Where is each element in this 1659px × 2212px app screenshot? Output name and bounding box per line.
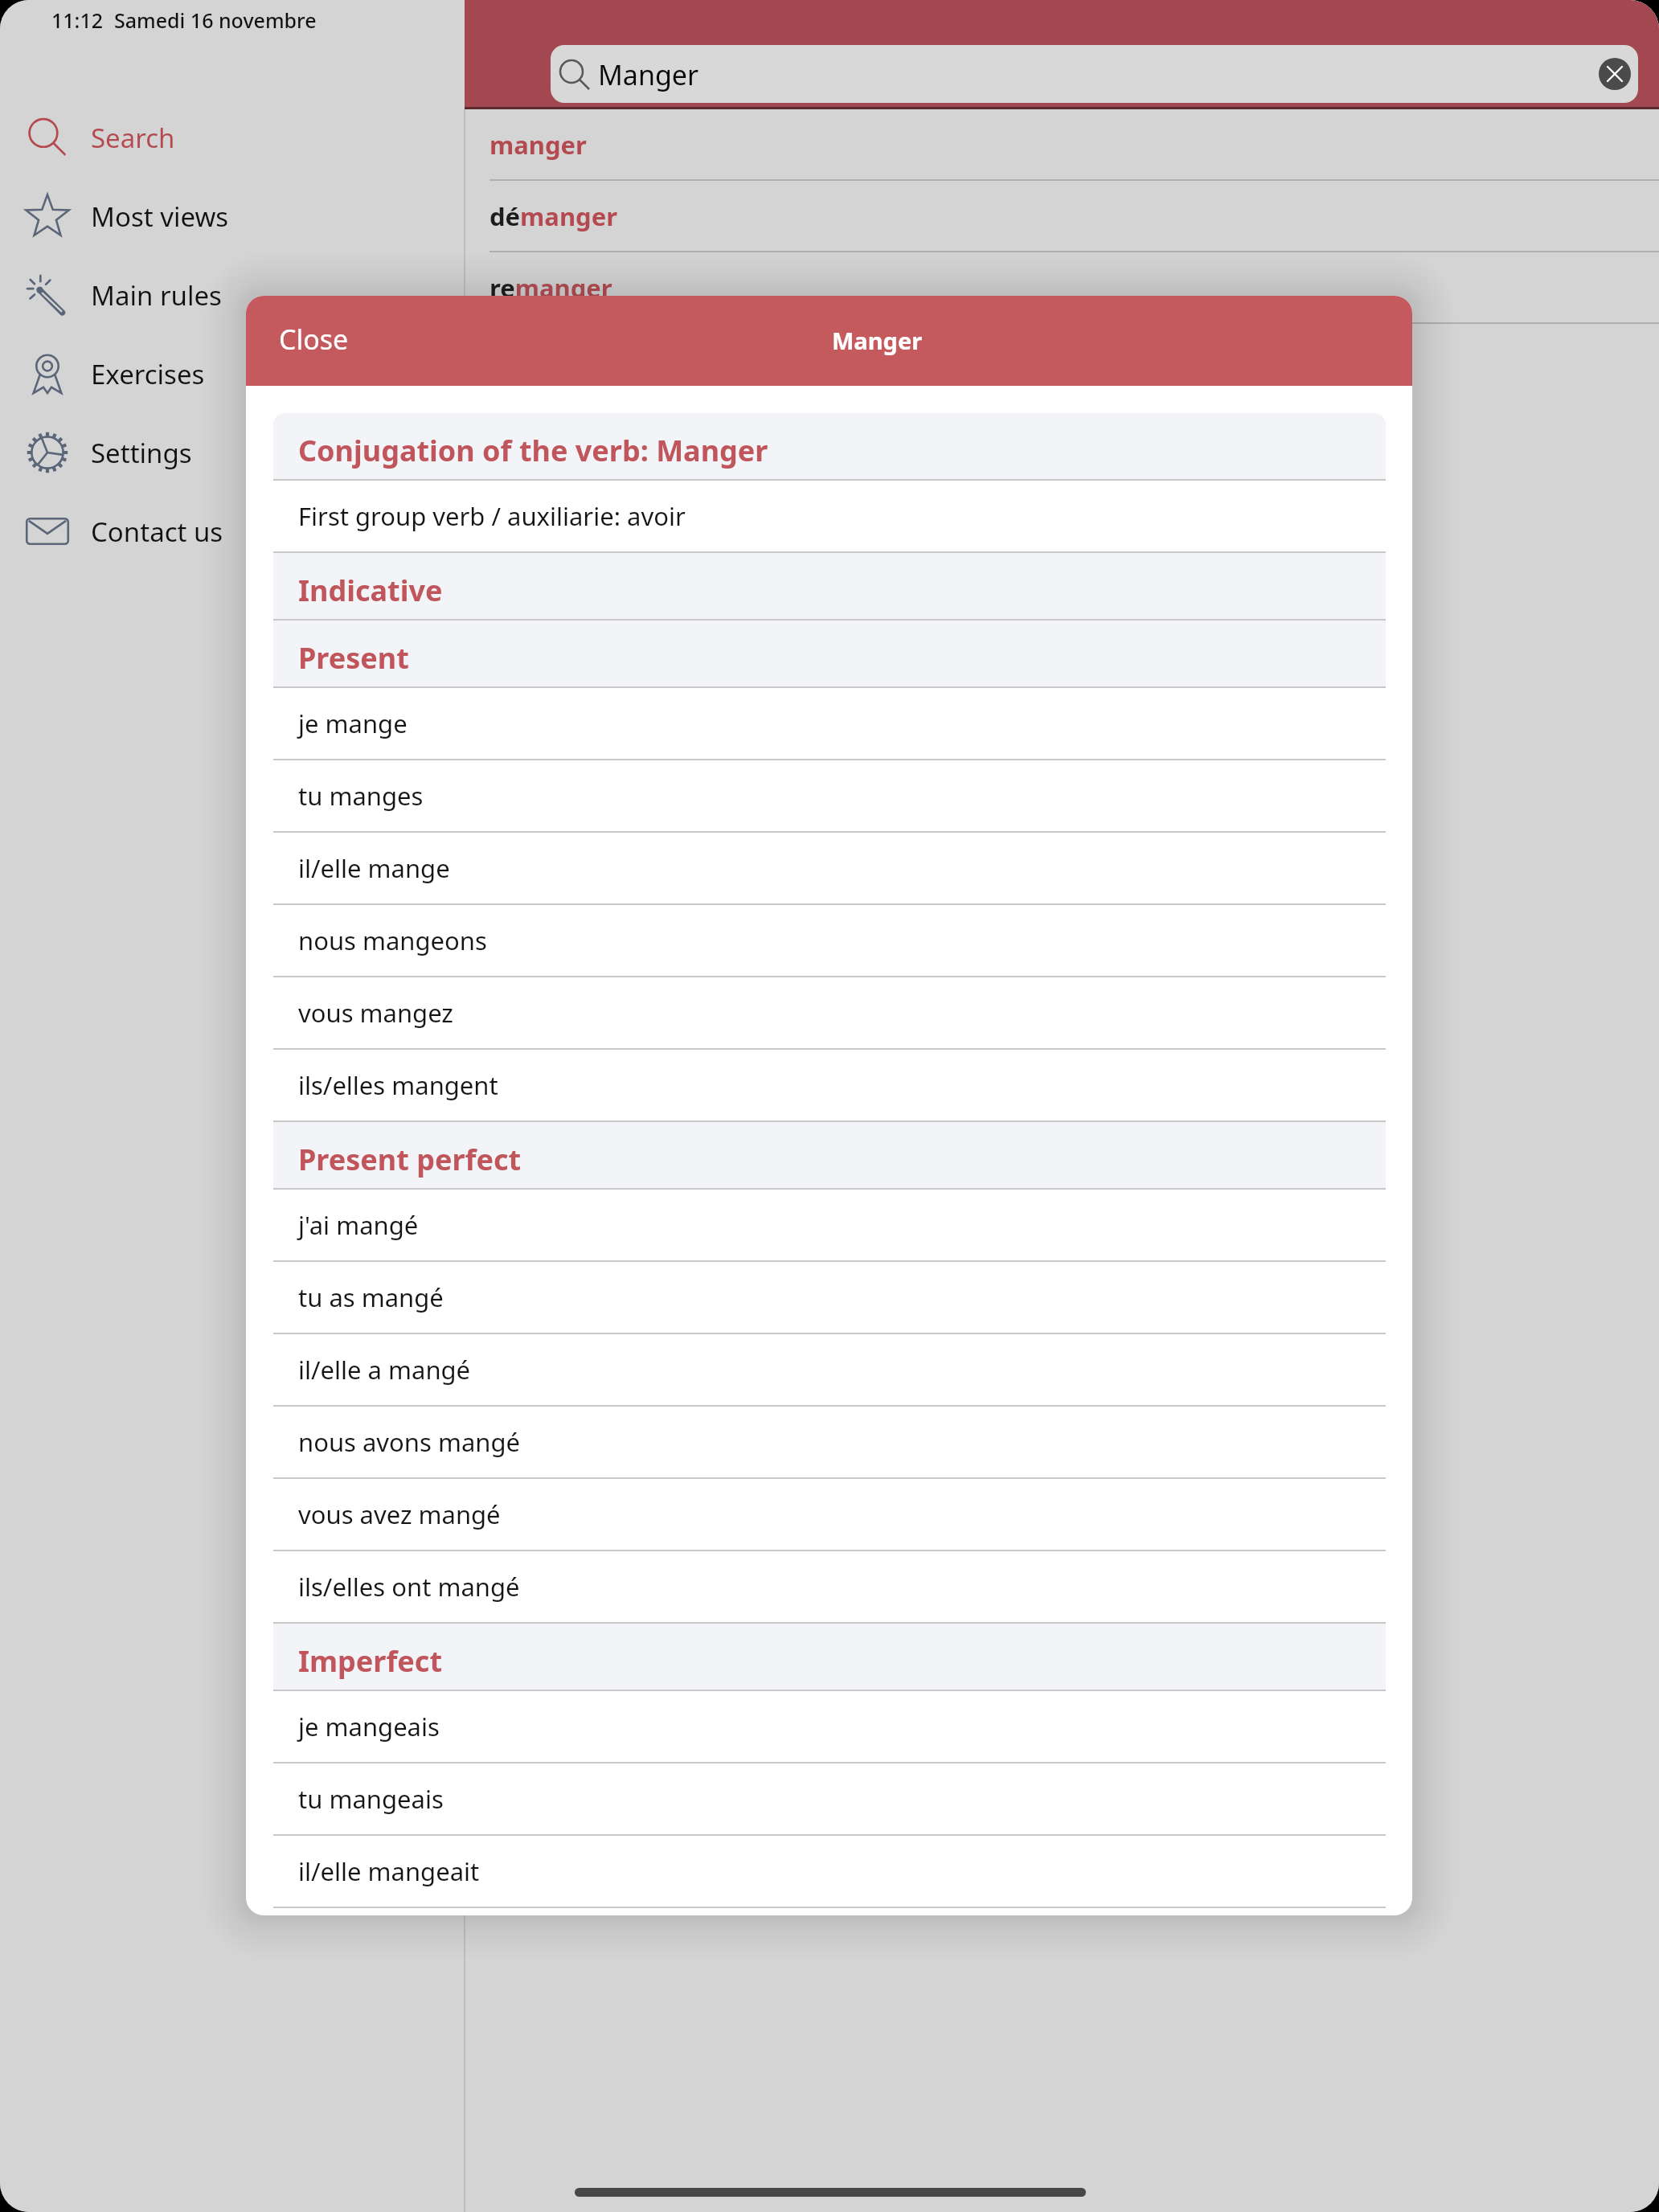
staticText: First group verb / auxiliarie: avoir	[298, 499, 686, 533]
staticText: Settings	[91, 435, 192, 471]
staticText: vous mangez	[298, 996, 453, 1030]
staticText: tu as mangé	[298, 1280, 444, 1314]
staticText: Present	[298, 638, 409, 678]
button[interactable]: j'ai mangé	[273, 1190, 1386, 1260]
staticText: Most views	[91, 199, 229, 235]
button[interactable]: tu as mangé	[273, 1262, 1386, 1333]
button[interactable]: vous avez mangé	[273, 1479, 1386, 1550]
button[interactable]: démanger	[465, 181, 1659, 252]
staticText: Main rules	[91, 277, 222, 313]
button[interactable]: Manger	[551, 45, 1638, 103]
button[interactable]: je mange	[273, 688, 1386, 759]
button[interactable]: nous avons mangé	[273, 1407, 1386, 1477]
button[interactable]: il/elle mange	[273, 833, 1386, 903]
button[interactable]: je mangeais	[273, 1691, 1386, 1762]
button[interactable]: Clear search	[1599, 58, 1631, 90]
staticText: tu manges	[298, 779, 424, 813]
button[interactable]: Exercises	[0, 334, 465, 413]
staticText: nous avons mangé	[298, 1425, 521, 1459]
button[interactable]: nous mangeons	[273, 905, 1386, 976]
staticText: Conjugation of the verb: Manger	[298, 431, 768, 470]
staticText: j'ai mangé	[298, 1208, 419, 1242]
staticText: ils/elles ont mangé	[298, 1570, 520, 1604]
button[interactable]: Main rules	[0, 256, 465, 334]
button[interactable]: tu mangeais	[273, 1763, 1386, 1834]
button[interactable]: First group verb / auxiliarie: avoir	[273, 481, 1386, 551]
staticText: je mangeais	[298, 1710, 440, 1743]
staticText: Exercises	[91, 356, 205, 392]
staticText: vous avez mangé	[298, 1497, 501, 1531]
staticText: Manger	[832, 325, 923, 356]
staticText: tu mangeais	[298, 1782, 444, 1816]
staticText: démanger	[490, 199, 617, 233]
staticText: je mange	[298, 707, 408, 740]
button[interactable]: Indicative	[273, 553, 1386, 619]
staticText: Contact us	[91, 514, 223, 550]
staticText: Search	[91, 120, 175, 156]
button[interactable]: vous mangez	[273, 977, 1386, 1048]
button[interactable]: Most views	[0, 177, 465, 256]
staticText: manger	[490, 128, 587, 162]
button[interactable]: ils/elles ont mangé	[273, 1551, 1386, 1622]
button[interactable]: il/elle a mangé	[273, 1334, 1386, 1405]
button[interactable]: Present perfect	[273, 1122, 1386, 1188]
button[interactable]: Search	[0, 98, 465, 177]
button[interactable]: remanger	[465, 252, 1659, 324]
button[interactable]: tu manges	[273, 760, 1386, 831]
staticText: Close	[279, 321, 349, 358]
staticText: Imperfect	[298, 1641, 443, 1681]
staticText: il/elle mangeait	[298, 1854, 480, 1888]
button[interactable]: Conjugation of the verb: Manger	[273, 413, 1386, 479]
staticText: remanger	[490, 271, 612, 305]
staticText: il/elle a mangé	[298, 1353, 471, 1387]
staticText: Indicative	[298, 571, 443, 610]
button[interactable]: manger	[465, 109, 1659, 181]
staticText: Present perfect	[298, 1140, 522, 1179]
button[interactable]: ils/elles mangent	[273, 1050, 1386, 1120]
button[interactable]: Contact us	[0, 492, 465, 571]
button[interactable]: Present	[273, 621, 1386, 686]
button[interactable]: Close	[279, 321, 349, 358]
staticText: Samedi 16 novembre	[114, 6, 317, 34]
button[interactable]: il/elle mangeait	[273, 1836, 1386, 1907]
staticText: Manger	[598, 56, 699, 93]
button[interactable]: Settings	[0, 413, 465, 492]
button[interactable]: Imperfect	[273, 1624, 1386, 1690]
staticText: ils/elles mangent	[298, 1068, 498, 1102]
staticText: nous mangeons	[298, 924, 487, 957]
staticText: 11:12	[51, 6, 104, 34]
staticText: il/elle mange	[298, 851, 450, 885]
